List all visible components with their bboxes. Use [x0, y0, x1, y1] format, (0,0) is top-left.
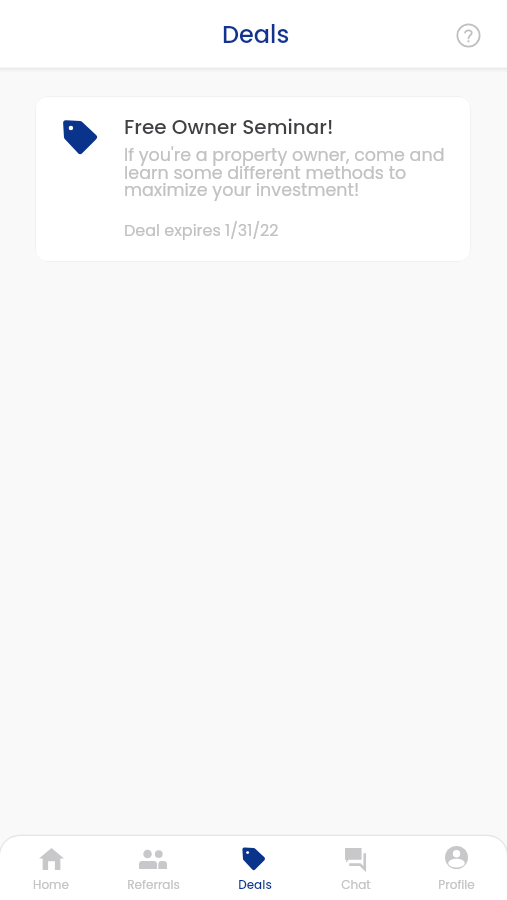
staticText: Deals: [238, 876, 272, 893]
button[interactable]: Deals: [204, 836, 305, 900]
staticText: Free Owner Seminar!: [124, 113, 334, 141]
button[interactable]: Free Owner Seminar!: [35, 96, 471, 262]
button[interactable]: Home: [0, 836, 102, 900]
button[interactable]: Profile: [406, 836, 507, 900]
button[interactable]: Help: [447, 14, 489, 56]
staticText: Profile: [438, 876, 475, 893]
staticText: Deals: [222, 18, 290, 52]
staticText: Home: [33, 876, 69, 893]
staticText: Chat: [341, 876, 371, 893]
staticText: If you're a property owner, come and lea…: [124, 143, 454, 202]
staticText: Deal expires 1/31/22: [124, 219, 279, 241]
staticText: Referrals: [127, 876, 180, 893]
button[interactable]: Chat: [305, 836, 406, 900]
button[interactable]: Referrals: [102, 836, 204, 900]
